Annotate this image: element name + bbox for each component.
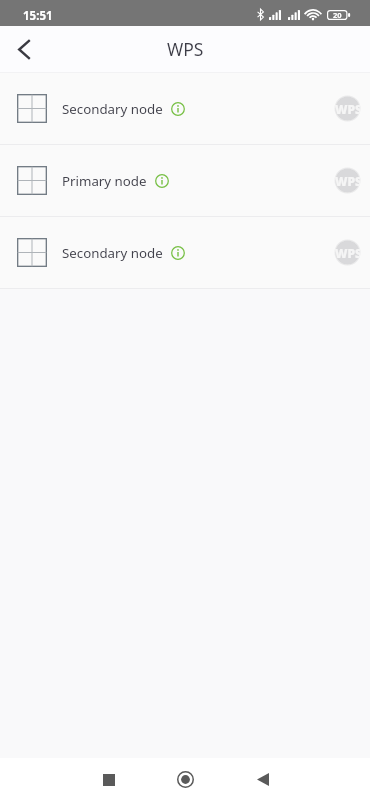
staticText: 20 bbox=[333, 10, 342, 20]
staticText: WPS bbox=[335, 101, 360, 117]
button[interactable]: Recent apps bbox=[87, 758, 130, 801]
button[interactable]: Back bbox=[0, 26, 46, 72]
staticText: Secondary node bbox=[62, 100, 163, 118]
button[interactable]: Home bbox=[164, 758, 207, 801]
button[interactable]: Secondary node bbox=[0, 73, 370, 144]
staticText: Secondary node bbox=[62, 244, 163, 262]
staticText: Primary node bbox=[62, 172, 147, 190]
staticText: WPS bbox=[335, 245, 360, 261]
staticText: 15:51 bbox=[23, 8, 53, 24]
staticText: WPS bbox=[335, 173, 360, 189]
button[interactable]: Secondary node bbox=[0, 217, 370, 288]
button[interactable]: Primary node bbox=[0, 145, 370, 216]
button[interactable]: Back bbox=[241, 758, 284, 801]
staticText: WPS bbox=[167, 37, 204, 61]
